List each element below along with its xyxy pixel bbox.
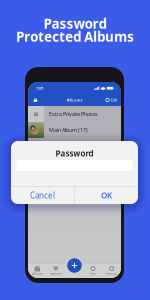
button[interactable]: Extra Private Photos	[28, 106, 121, 122]
staticText: Protected Albums	[16, 28, 134, 45]
button[interactable]: Favorites	[47, 263, 65, 278]
button[interactable]: Locked albums	[30, 94, 41, 106]
staticText: Hide	[90, 272, 97, 276]
button[interactable]: Settings	[102, 263, 121, 278]
staticText: OK	[101, 190, 112, 201]
staticText: Albums	[66, 97, 82, 103]
button[interactable]: Add album	[66, 257, 82, 273]
button[interactable]: OK	[75, 187, 138, 204]
staticText: Albums	[32, 272, 42, 276]
button[interactable]: Albums	[28, 263, 47, 278]
button[interactable]: Edit	[105, 94, 117, 106]
staticText: Extra Private Photos	[49, 110, 98, 118]
staticText: Cancel	[30, 190, 55, 201]
staticText: Edit	[111, 97, 117, 103]
staticText: 1:09	[36, 85, 43, 91]
staticText: Password	[55, 148, 93, 159]
button[interactable]: Cancel	[11, 187, 74, 204]
staticText: Settings	[106, 272, 117, 276]
button[interactable]: Main Album (17)	[28, 122, 121, 138]
button[interactable]: Hide	[84, 263, 102, 278]
staticText: Password	[43, 15, 106, 32]
staticText: Favorites	[50, 272, 61, 276]
staticText: Main Album (17)	[49, 126, 88, 134]
